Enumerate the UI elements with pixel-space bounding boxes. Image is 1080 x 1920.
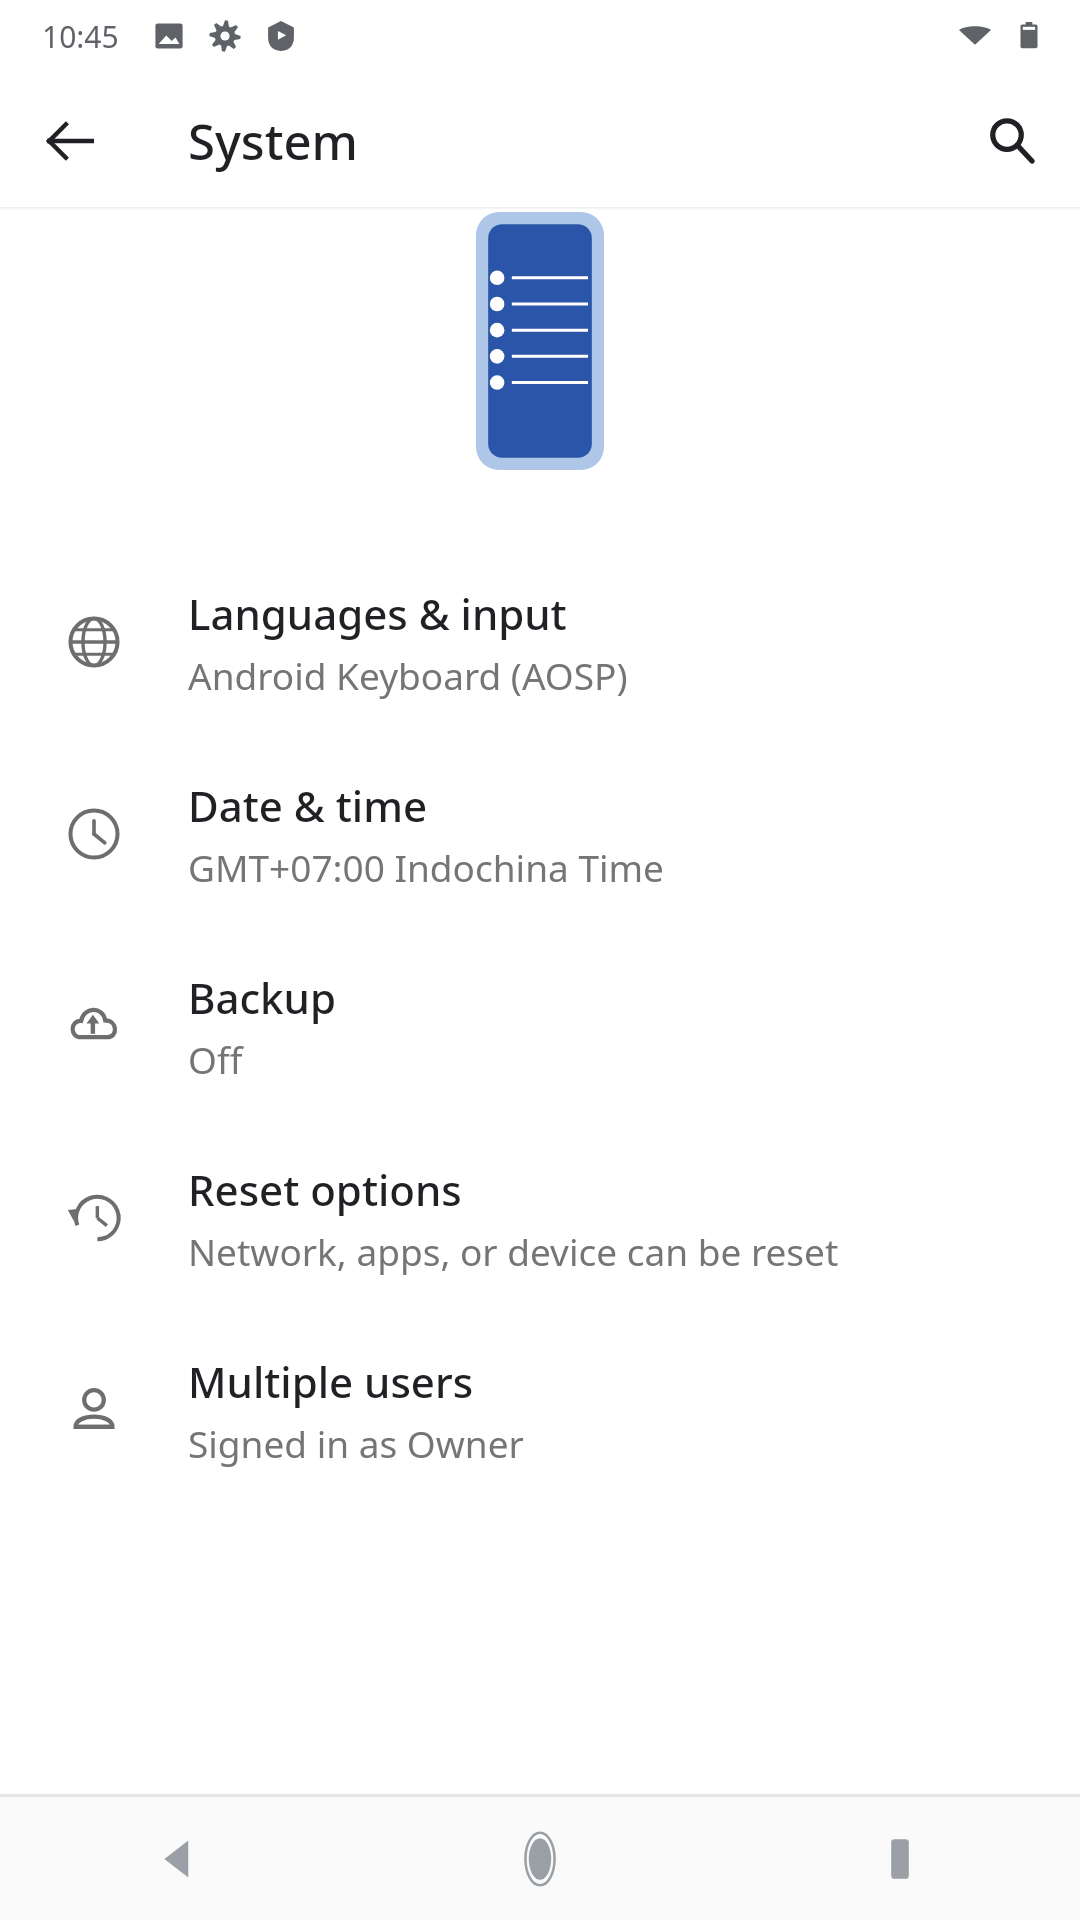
button[interactable]: Reset options [0, 1122, 1080, 1314]
staticText: GMT+07:00 Indochina Time [188, 842, 664, 892]
button[interactable]: Search [964, 93, 1060, 189]
button[interactable]: Recent apps [720, 1797, 1080, 1920]
staticText: Languages & input [188, 585, 567, 642]
button[interactable]: Languages & input [0, 546, 1080, 738]
staticText: Multiple users [188, 1353, 474, 1410]
staticText: 10:45 [42, 16, 119, 57]
button[interactable]: Back [0, 1797, 360, 1920]
button[interactable]: Back [22, 93, 118, 189]
staticText: System [188, 108, 358, 175]
staticText: Network, apps, or device can be reset [188, 1226, 839, 1276]
staticText: Date & time [188, 777, 428, 834]
button[interactable]: Date & time [0, 738, 1080, 930]
staticText: Signed in as Owner [188, 1418, 524, 1468]
button[interactable]: Backup [0, 930, 1080, 1122]
button[interactable]: Multiple users [0, 1314, 1080, 1506]
staticText: Android Keyboard (AOSP) [188, 650, 628, 700]
button[interactable]: Home [360, 1797, 720, 1920]
staticText: Reset options [188, 1161, 462, 1218]
staticText: Backup [188, 969, 336, 1026]
staticText: Off [188, 1034, 243, 1084]
